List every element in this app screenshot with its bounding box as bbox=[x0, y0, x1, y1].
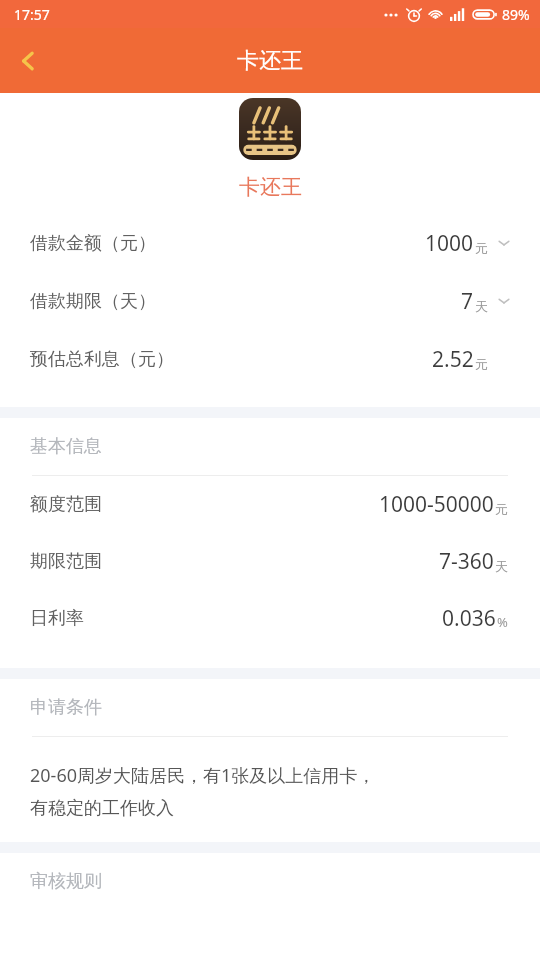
button[interactable]: 借款金额（元） bbox=[0, 214, 540, 272]
button[interactable]: 日利率 bbox=[0, 590, 540, 647]
staticText: 借款期限（天） bbox=[30, 290, 156, 313]
staticText: 元 bbox=[475, 240, 488, 256]
staticText: 0.036 bbox=[442, 604, 496, 633]
staticText: 2.52 bbox=[432, 345, 474, 374]
staticText: 基本信息 bbox=[30, 435, 102, 458]
staticText: 7 bbox=[461, 287, 474, 316]
staticText: 日利率 bbox=[30, 607, 84, 630]
button[interactable]: Back bbox=[0, 33, 56, 89]
staticText: 卡还王 bbox=[239, 174, 302, 200]
staticText: 有稳定的工作收入 bbox=[30, 797, 174, 820]
staticText: 天 bbox=[495, 558, 508, 574]
button[interactable]: 额度范围 bbox=[0, 476, 540, 533]
staticText: 预估总利息（元） bbox=[30, 348, 174, 371]
staticText: 89% bbox=[502, 5, 530, 24]
staticText: 20-60周岁大陆居民，有1张及以上信用卡， bbox=[30, 763, 376, 788]
staticText: 17:57 bbox=[14, 5, 50, 24]
staticText: 期限范围 bbox=[30, 550, 102, 573]
button[interactable]: 借款期限（天） bbox=[0, 272, 540, 330]
staticText: 借款金额（元） bbox=[30, 232, 156, 255]
staticText: 额度范围 bbox=[30, 493, 102, 516]
staticText: 7-360 bbox=[439, 547, 494, 576]
staticText: % bbox=[497, 613, 508, 631]
button[interactable]: 期限范围 bbox=[0, 533, 540, 590]
staticText: 申请条件 bbox=[30, 696, 102, 719]
staticText: 审核规则 bbox=[30, 870, 102, 893]
staticText: 元 bbox=[475, 356, 488, 372]
staticText: 元 bbox=[495, 501, 508, 517]
button[interactable]: 预估总利息（元） bbox=[0, 330, 540, 388]
staticText: 1000-50000 bbox=[379, 490, 494, 519]
staticText: 天 bbox=[475, 298, 488, 314]
staticText: 1000 bbox=[425, 229, 474, 258]
staticText: 卡还王 bbox=[237, 47, 303, 75]
